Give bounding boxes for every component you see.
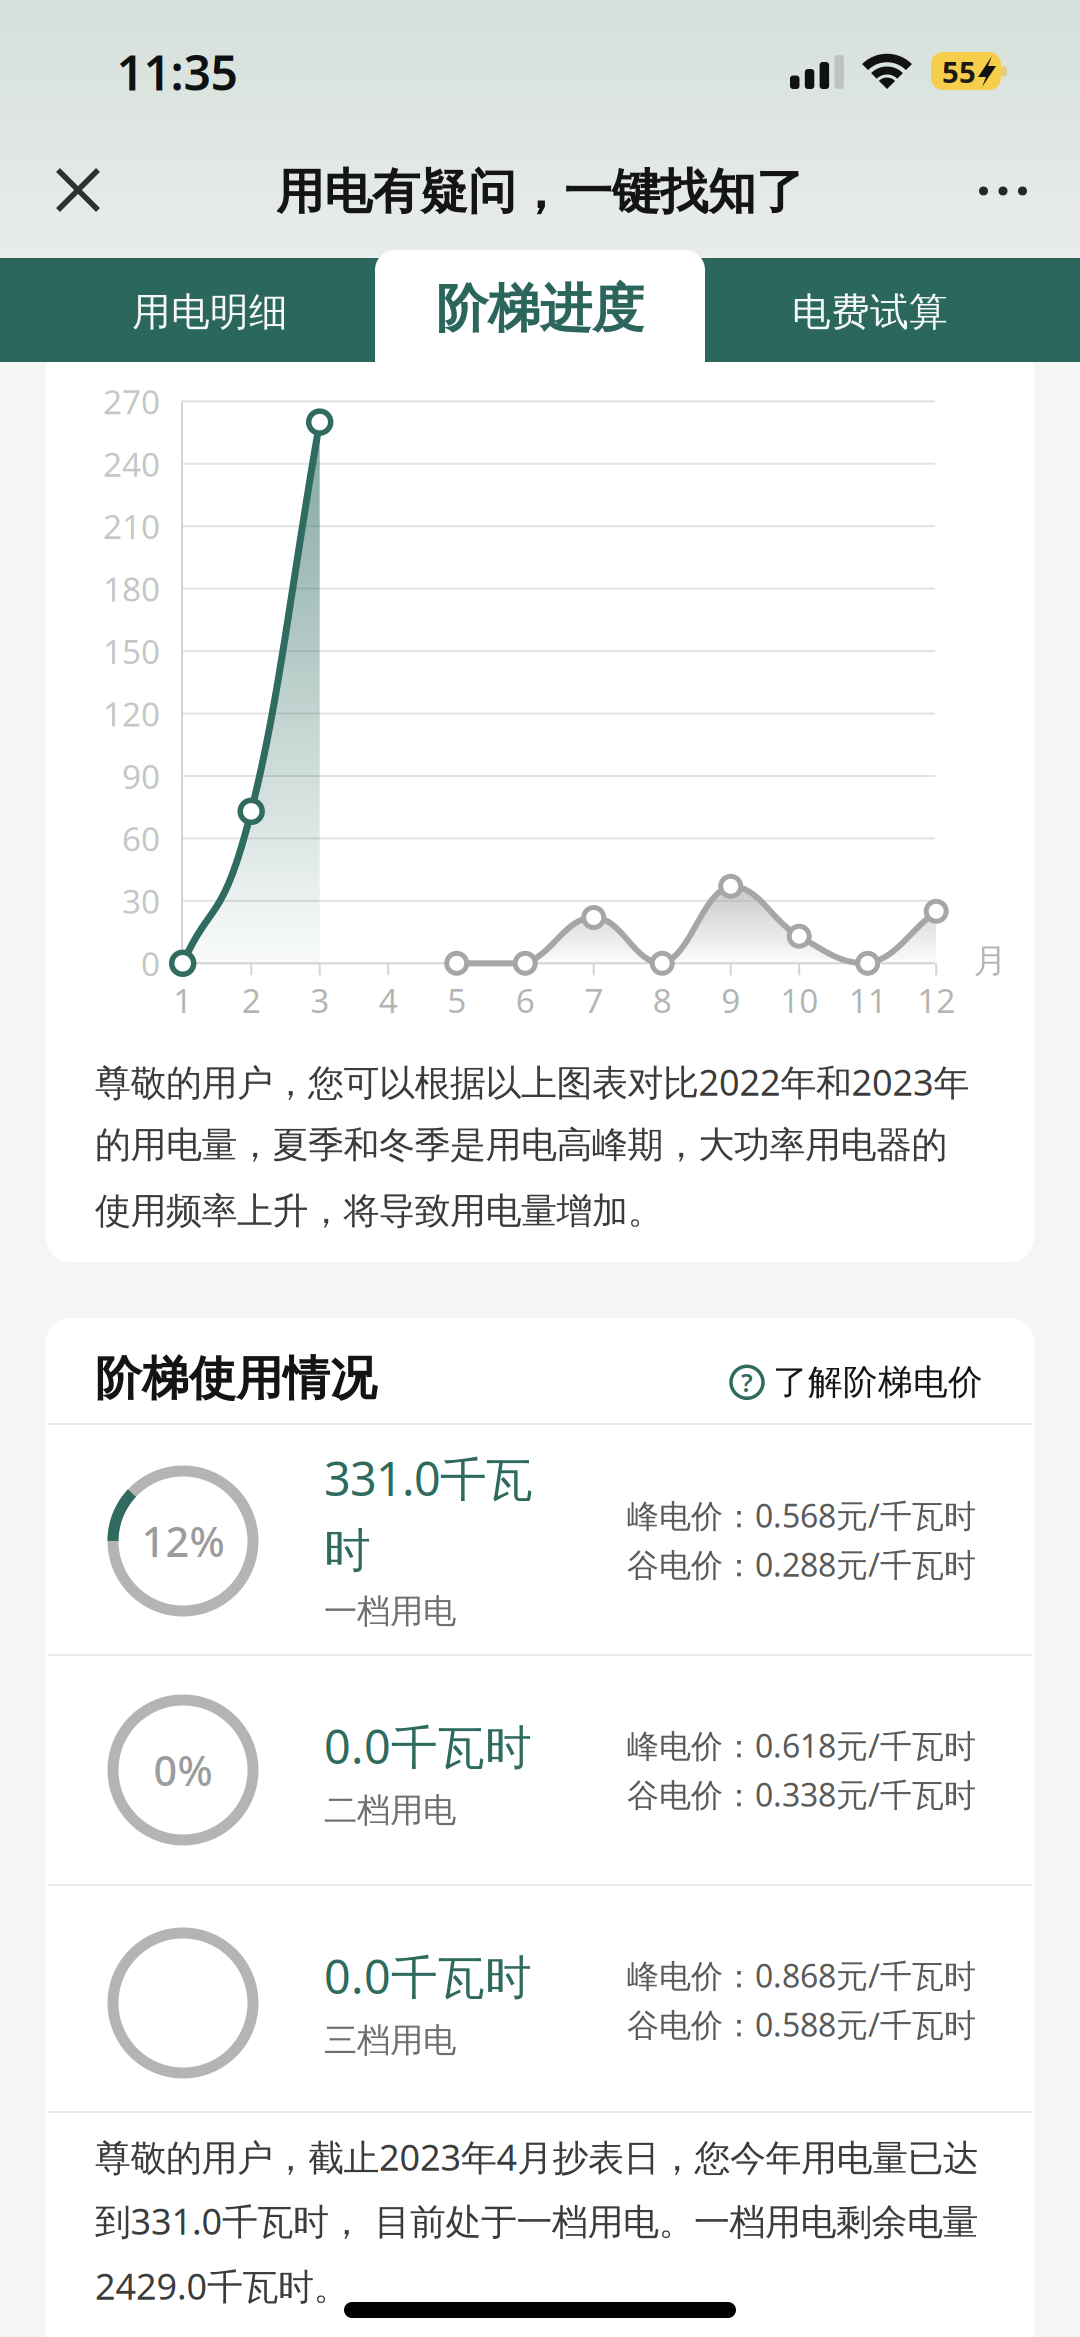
staticText: 11:35 [116, 40, 237, 104]
staticText: 月 [973, 940, 1006, 981]
staticText: 6 [516, 978, 535, 1022]
staticText: 120 [103, 691, 160, 736]
button[interactable] [38, 150, 118, 230]
staticText: 60 [122, 816, 160, 861]
staticText: 11 [849, 978, 887, 1022]
staticText: 尊敬的用户，截止2023年4月抄表日，您今年用电量已达 [95, 2133, 979, 2181]
staticText: 240 [103, 442, 160, 486]
staticText: 到331.0千瓦时， 目前处于一档用电。一档用电剩余电量 [95, 2197, 978, 2245]
staticText: 0.0千瓦时 [324, 1945, 532, 2007]
staticText: 用电有疑问，一键找知了 [276, 162, 804, 221]
staticText: 12% [141, 1514, 224, 1568]
button[interactable] [948, 151, 1058, 231]
staticText: 5 [447, 978, 466, 1022]
button[interactable]: 用电明细 [45, 260, 375, 364]
staticText: 尊敬的用户，您可以根据以上图表对比2022年和2023年 [95, 1058, 969, 1106]
staticText: 7 [584, 978, 603, 1022]
staticText: 90 [122, 754, 160, 798]
staticText: 150 [103, 629, 160, 673]
staticText: 331.0千瓦 [324, 1447, 533, 1509]
staticText: 用电明细 [132, 288, 288, 336]
staticText: 三档用电 [324, 2020, 456, 2061]
staticText: 1 [173, 978, 192, 1022]
staticText: 270 [103, 379, 160, 423]
staticText: 4 [379, 978, 398, 1022]
staticText: ? [741, 1365, 753, 1399]
staticText: 12 [917, 978, 955, 1022]
staticText: 8 [653, 978, 672, 1022]
staticText: 0% [153, 1743, 212, 1797]
staticText: 2 [242, 978, 261, 1022]
staticText: 3 [310, 978, 329, 1022]
staticText: 了解阶梯电价 [773, 1361, 983, 1404]
staticText: 峰电价：0.618元/千瓦时 [627, 1724, 976, 1766]
staticText: 二档用电 [324, 1790, 456, 1831]
staticText: 阶梯进度 [436, 277, 644, 341]
staticText: 30 [122, 879, 160, 923]
staticText: 的用电量，夏季和冬季是用电高峰期，大功率用电器的 [95, 1123, 947, 1167]
staticText: 谷电价：0.288元/千瓦时 [627, 1543, 976, 1585]
staticText: 电费试算 [792, 288, 948, 336]
staticText: 10 [780, 978, 818, 1022]
staticText: 阶梯使用情况 [95, 1350, 377, 1407]
staticText: 使用频率上升，将导致用电量增加。 [95, 1189, 663, 1233]
button[interactable]: 阶梯进度 [375, 254, 705, 364]
staticText: 时 [324, 1522, 371, 1579]
staticText: 55 [942, 52, 976, 91]
staticText: 一档用电 [324, 1591, 456, 1632]
staticText: 谷电价：0.588元/千瓦时 [627, 2003, 976, 2045]
button[interactable]: ? [730, 1361, 983, 1404]
staticText: 0 [141, 941, 160, 985]
staticText: 210 [103, 504, 160, 548]
staticText: 0.0千瓦时 [324, 1715, 532, 1777]
staticText: 2429.0千瓦时。 [95, 2262, 349, 2310]
staticText: 9 [721, 978, 740, 1022]
button[interactable]: 电费试算 [705, 260, 1035, 364]
staticText: 峰电价：0.568元/千瓦时 [627, 1494, 976, 1536]
staticText: 谷电价：0.338元/千瓦时 [627, 1773, 976, 1815]
staticText: 180 [103, 566, 160, 611]
staticText: 峰电价：0.868元/千瓦时 [627, 1954, 976, 1996]
